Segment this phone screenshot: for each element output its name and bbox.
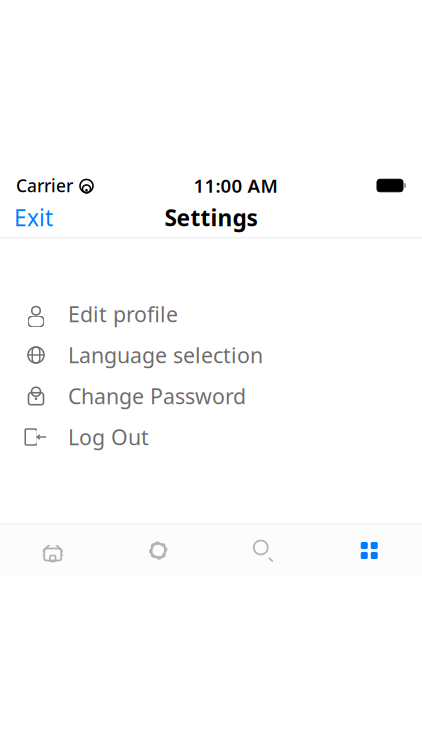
button[interactable]: Language selection (0, 334, 422, 375)
staticText: Language selection (68, 341, 263, 369)
button[interactable]: Change Password (0, 375, 422, 416)
button[interactable]: More (316, 524, 422, 576)
staticText: 11:00 AM (193, 173, 277, 198)
button[interactable]: Edit profile (0, 293, 422, 334)
button[interactable]: Favorites (105, 524, 211, 576)
button[interactable]: Exit (0, 194, 67, 240)
button[interactable]: Search (211, 524, 316, 576)
staticText: Exit (14, 202, 53, 232)
button[interactable]: Home (0, 524, 105, 576)
staticText: Log Out (68, 423, 149, 451)
staticText: Change Password (68, 382, 246, 410)
staticText: Settings (164, 202, 257, 232)
staticText: Edit profile (68, 300, 178, 328)
staticText: Carrier (16, 174, 73, 197)
button[interactable]: Log Out (0, 416, 422, 457)
